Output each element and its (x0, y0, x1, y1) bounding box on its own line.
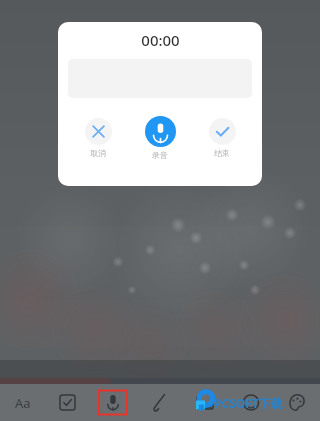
staticText: 取消 (90, 148, 106, 158)
button[interactable]: Record (136, 116, 184, 160)
staticText: Aa (15, 394, 31, 412)
staticText: 结束 (214, 148, 230, 158)
button[interactable]: Checklist (45, 384, 90, 421)
button[interactable]: Insert image (182, 384, 228, 421)
button[interactable]: Emoji (228, 384, 274, 421)
button[interactable]: Cancel (74, 116, 122, 158)
button[interactable]: Aa (0, 384, 45, 421)
button[interactable]: Draw (136, 384, 182, 421)
button[interactable]: Voice input (90, 384, 136, 421)
staticText: 录音 (152, 150, 168, 160)
staticText: PCSOFT下载 (214, 395, 283, 411)
staticText: 00:00 (141, 30, 180, 50)
button[interactable]: Finish (198, 116, 246, 158)
button[interactable]: Color (274, 384, 320, 421)
